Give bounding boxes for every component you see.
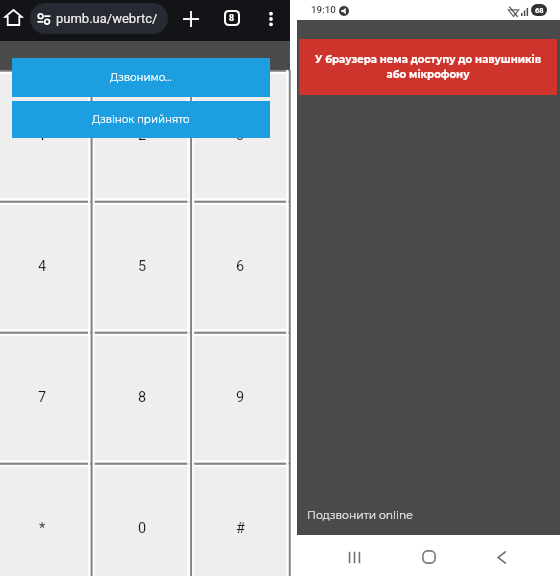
staticText: 68 (535, 6, 544, 15)
button[interactable]: 5 (92, 201, 192, 332)
button[interactable]: 7 (0, 332, 92, 463)
staticText: 0 (138, 520, 147, 537)
button[interactable]: 4 (0, 201, 92, 332)
button[interactable]: More options (258, 6, 283, 31)
button[interactable]: 2 (92, 70, 192, 201)
button[interactable]: Дзвонимо... (12, 58, 270, 97)
staticText: 4 (38, 258, 47, 275)
button[interactable]: New tab (178, 6, 203, 31)
staticText: 1 (38, 127, 47, 144)
button[interactable]: 9 (191, 332, 290, 463)
staticText: Дзвінок прийнято (92, 113, 190, 126)
staticText: * (39, 520, 46, 537)
staticText: # (236, 520, 245, 537)
staticText: Дзвонимо... (110, 71, 172, 84)
staticText: 3 (236, 127, 245, 144)
button[interactable]: 1 (0, 70, 92, 201)
button[interactable]: Recent apps (336, 539, 372, 575)
staticText: 6 (236, 258, 245, 275)
button[interactable]: # (191, 463, 290, 576)
staticText: 7 (38, 389, 47, 406)
button[interactable]: Tabs (219, 5, 244, 30)
staticText: 19:10 (311, 4, 336, 15)
button[interactable]: У браузера нема доступу до навушників аб… (299, 39, 557, 95)
staticText: 8 (229, 13, 235, 24)
staticText: 8 (138, 389, 147, 406)
button[interactable]: Подзвонити online (307, 509, 413, 522)
button[interactable]: pumb.ua/webrtc/ (30, 3, 168, 34)
staticText: 5 (138, 258, 147, 275)
button[interactable]: 3 (191, 70, 290, 201)
staticText: 9 (236, 389, 245, 406)
button[interactable]: 6 (191, 201, 290, 332)
staticText: pumb.ua/webrtc/ (56, 11, 158, 26)
button[interactable]: Home (411, 539, 447, 575)
button[interactable]: * (0, 463, 92, 576)
staticText: 2 (138, 127, 147, 144)
button[interactable]: Дзвінок прийнято (12, 101, 270, 138)
button[interactable]: 0 (92, 463, 192, 576)
button[interactable]: Back (483, 539, 519, 575)
button[interactable]: 8 (92, 332, 192, 463)
staticText: У браузера нема доступу до навушників аб… (307, 53, 549, 80)
button[interactable]: Home (1, 5, 25, 29)
